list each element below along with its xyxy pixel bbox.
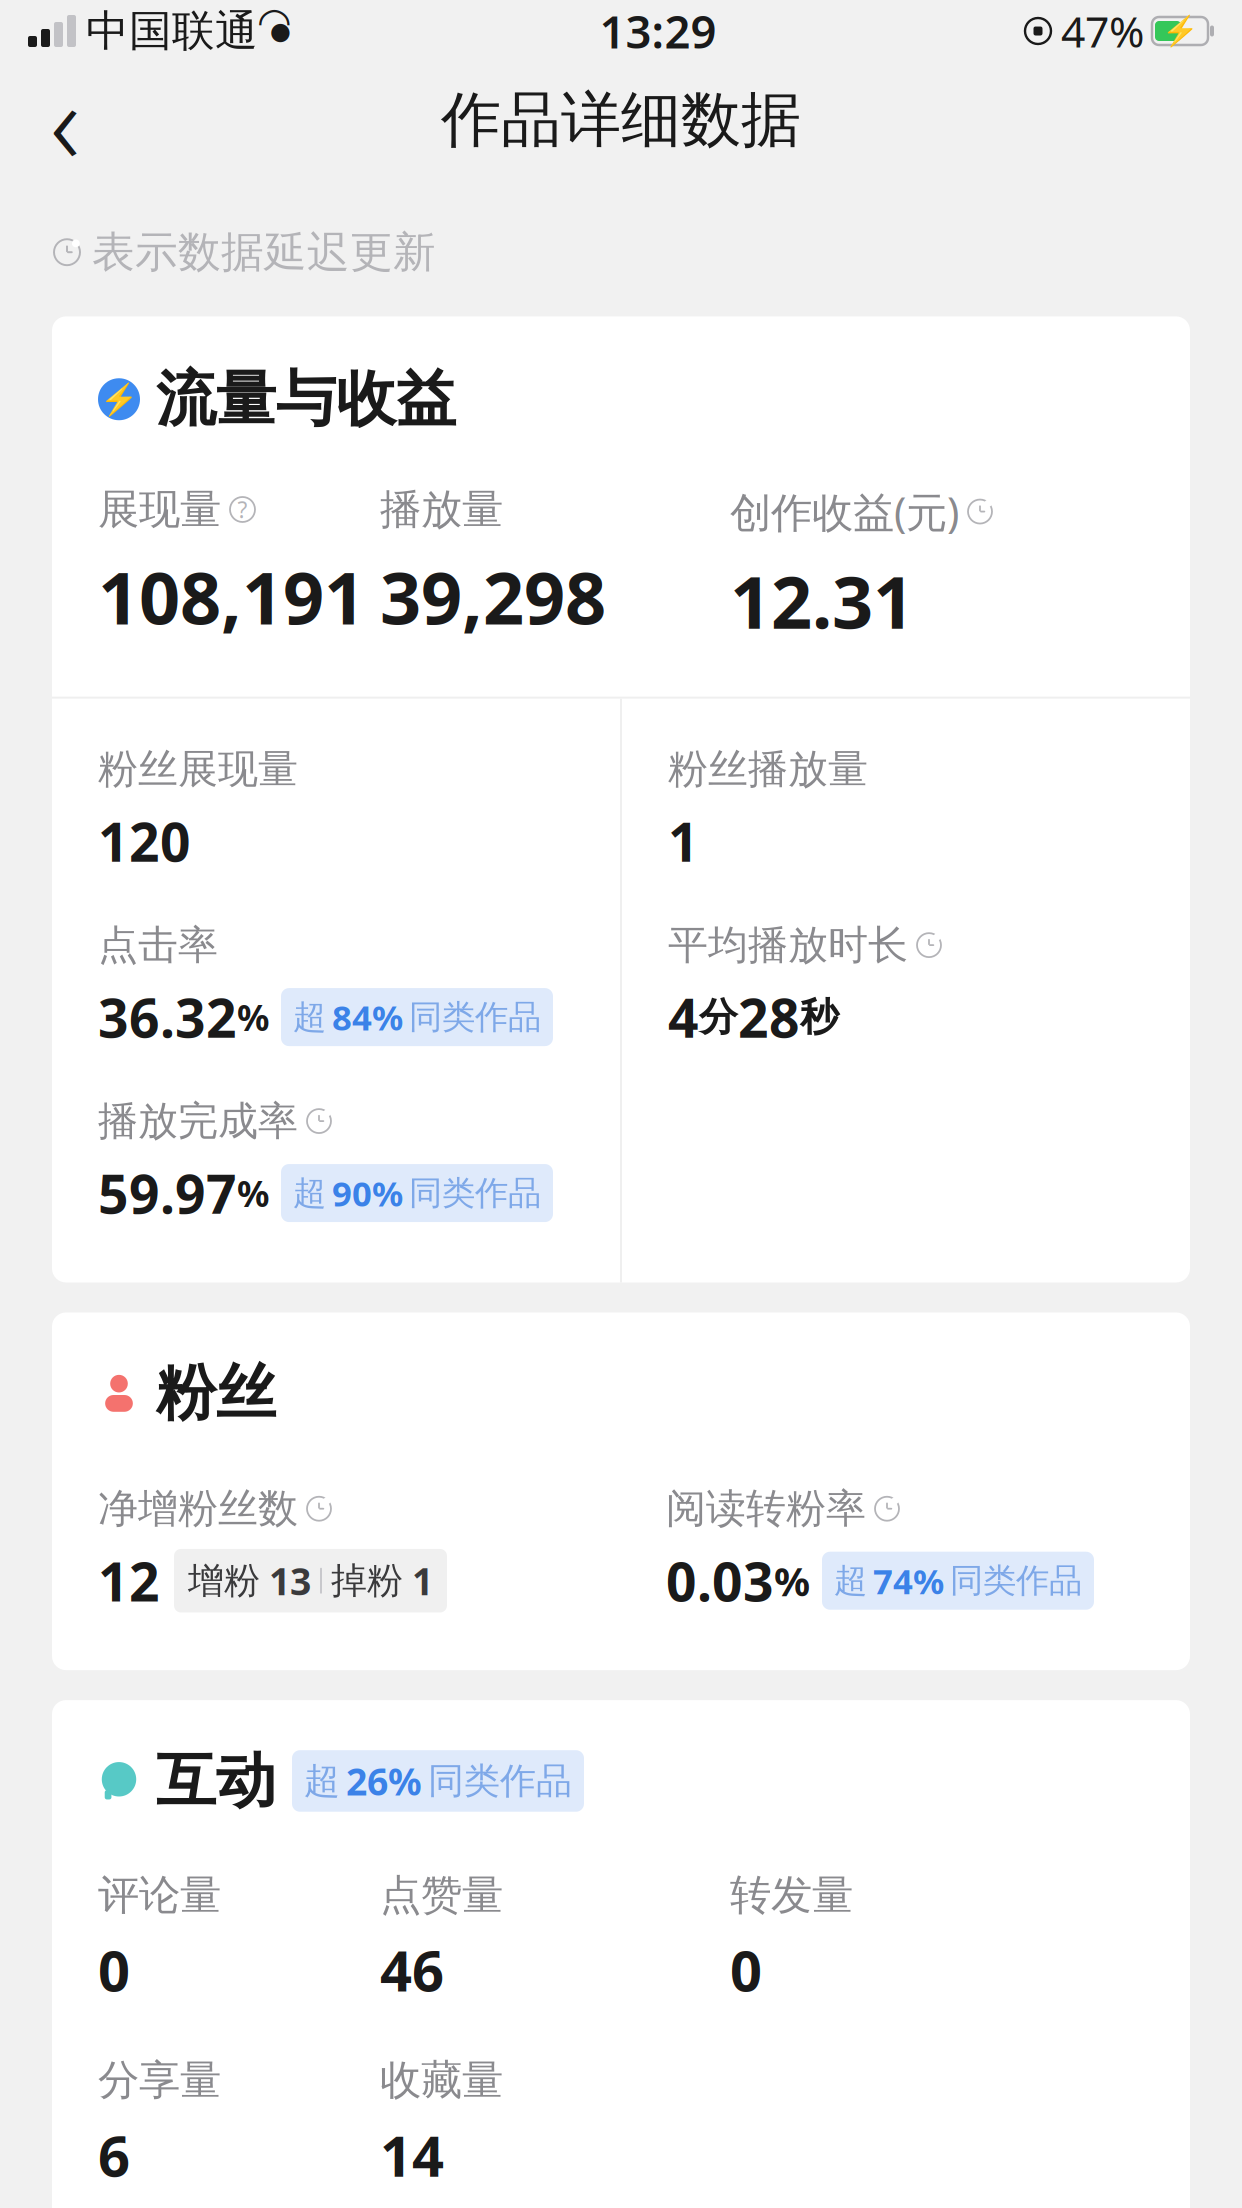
staticText: 分享量 — [98, 2055, 221, 2106]
staticText: 同类作品 — [409, 997, 541, 1037]
staticText: 6 — [98, 2118, 130, 2192]
staticText: 74% — [873, 1558, 944, 1604]
staticText: 阅读转粉率 — [666, 1484, 866, 1533]
staticText: ? — [237, 494, 247, 524]
staticText: 1 — [668, 806, 699, 876]
staticText: 47% — [1061, 3, 1144, 59]
staticText: 中国联通 — [86, 5, 258, 57]
staticText: 46 — [380, 1933, 444, 2007]
staticText: ● — [270, 17, 291, 45]
staticText: 掉粉 — [331, 1559, 403, 1603]
staticText: 净增粉丝数 — [98, 1484, 298, 1533]
staticText: 28 — [738, 982, 800, 1052]
staticText: ⚡ — [100, 382, 138, 417]
staticText: 平均播放时长 — [668, 921, 908, 970]
staticText: 90% — [332, 1170, 403, 1216]
staticText: 点击率 — [98, 921, 218, 970]
staticText: 0.03 — [666, 1545, 774, 1616]
staticText: 粉丝播放量 — [668, 745, 868, 794]
staticText: 12.31 — [730, 553, 914, 649]
staticText: 转发量 — [730, 1870, 853, 1921]
staticText: 39,298 — [380, 549, 606, 644]
staticText: 26% — [346, 1756, 422, 1806]
staticText: 同类作品 — [428, 1759, 572, 1803]
staticText: 14 — [380, 2118, 444, 2192]
staticText: ⚡ — [1161, 14, 1198, 48]
staticText: % — [237, 993, 269, 1041]
staticText: ‹ — [50, 44, 80, 196]
staticText: 秒 — [800, 993, 839, 1041]
staticText: 4 — [668, 982, 699, 1052]
staticText: 粉丝展现量 — [98, 745, 298, 794]
staticText: 0 — [730, 1933, 762, 2007]
staticText: 粉丝 — [156, 1356, 276, 1430]
staticText: 84% — [332, 994, 403, 1040]
staticText: 120 — [98, 806, 191, 876]
staticText: 36.32 — [98, 982, 237, 1052]
staticText: 0 — [98, 1933, 130, 2007]
staticText: 点赞量 — [380, 1870, 503, 1921]
staticText: % — [237, 1169, 269, 1217]
staticText: 增粉 — [188, 1559, 260, 1603]
staticText: % — [774, 1554, 810, 1607]
staticText: 作品详细数据 — [441, 83, 801, 157]
staticText: ◠ — [259, 0, 290, 45]
staticText: 12 — [98, 1545, 160, 1616]
staticText: 互动 — [156, 1744, 276, 1818]
staticText: 流量与收益 — [156, 362, 456, 436]
staticText: 同类作品 — [409, 1173, 541, 1213]
staticText: 分 — [699, 993, 738, 1041]
staticText: 13 — [269, 1556, 311, 1605]
staticText: 表示数据延迟更新 — [92, 226, 436, 278]
staticText: 同类作品 — [950, 1560, 1082, 1601]
staticText: 播放完成率 — [98, 1096, 298, 1146]
staticText: 超 — [293, 997, 326, 1037]
staticText: 创作收益(元) — [730, 484, 959, 539]
staticText: 1 — [412, 1556, 433, 1605]
staticText: 播放量 — [380, 484, 503, 535]
staticText: 评论量 — [98, 1870, 221, 1921]
staticText: 59.97 — [98, 1158, 237, 1228]
staticText: 超 — [834, 1560, 867, 1601]
staticText: 超 — [293, 1173, 326, 1213]
staticText: 收藏量 — [380, 2055, 503, 2106]
button[interactable]: 返回 — [22, 77, 108, 163]
staticText: 超 — [304, 1759, 340, 1803]
staticText: 13:29 — [599, 1, 716, 61]
staticText: 展现量 — [98, 484, 221, 535]
staticText: 108,191 — [98, 549, 365, 644]
